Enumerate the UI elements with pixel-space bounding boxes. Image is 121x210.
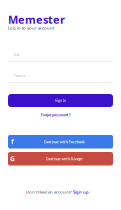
staticText: Forgot password ?	[41, 113, 71, 117]
staticText: Don't Have an account?	[26, 189, 72, 195]
button[interactable]: Forgot password ?	[8, 111, 104, 119]
staticText: Sign In	[55, 98, 66, 102]
staticText: Email	[14, 53, 20, 57]
staticText: f	[11, 137, 14, 146]
staticText: Password	[14, 74, 26, 78]
staticText: Memester	[8, 12, 65, 27]
staticText: Log in to your account	[8, 25, 54, 31]
button[interactable]: f	[8, 135, 113, 148]
staticText: Continue with Google	[45, 156, 82, 161]
button[interactable]: Sign In	[8, 94, 113, 107]
staticText: Continue with Facebook	[43, 139, 84, 144]
button[interactable]: Don't Have an account?	[8, 188, 107, 196]
staticText: G	[10, 154, 15, 163]
button[interactable]: G	[8, 152, 113, 165]
staticText: Sign up	[73, 189, 89, 195]
